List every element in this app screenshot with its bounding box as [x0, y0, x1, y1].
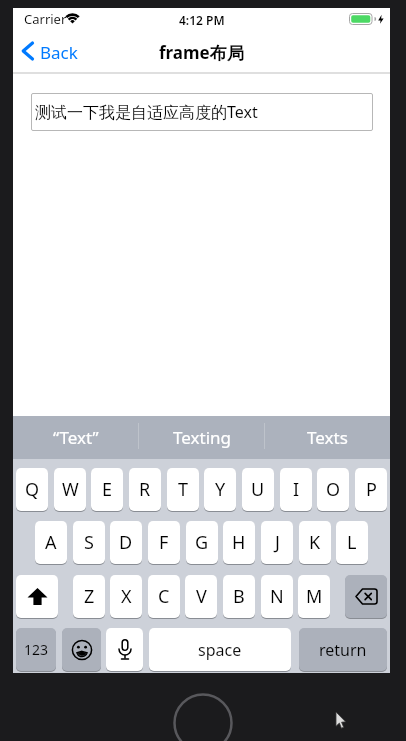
button[interactable]: O [317, 468, 349, 511]
staticText: 4:12 PM [179, 12, 225, 28]
staticText: H [232, 530, 246, 555]
staticText: E [102, 477, 113, 502]
button[interactable]: W [54, 468, 86, 511]
staticText: G [195, 530, 209, 555]
button[interactable]: Y [204, 468, 236, 511]
button[interactable]: Back [40, 32, 78, 72]
staticText: Texts [307, 426, 348, 449]
staticText: J [275, 530, 280, 555]
staticText: A [45, 530, 57, 555]
button[interactable] [16, 575, 58, 618]
button[interactable]: Texts [265, 416, 390, 459]
staticText: X [121, 584, 132, 609]
button[interactable]: H [223, 521, 255, 564]
button[interactable]: space [149, 628, 291, 671]
staticText: B [233, 584, 245, 609]
button[interactable]: D [110, 521, 142, 564]
button[interactable]: L [336, 521, 368, 564]
button[interactable]: B [223, 575, 255, 618]
button[interactable]: N [261, 575, 293, 618]
staticText: P [366, 477, 377, 502]
staticText: Z [84, 584, 95, 609]
button[interactable]: Texting [139, 416, 264, 459]
staticText: C [158, 584, 170, 609]
staticText: “Text” [53, 426, 99, 449]
button[interactable]: return [299, 628, 387, 671]
staticText: 测试一下我是自适应高度的Text [35, 101, 258, 123]
button[interactable] [345, 575, 387, 618]
staticText: Carrier [24, 10, 67, 28]
staticText: L [347, 530, 357, 555]
staticText: F [159, 530, 169, 555]
button[interactable]: I [280, 468, 312, 511]
button[interactable]: J [261, 521, 293, 564]
staticText: O [326, 477, 341, 502]
button[interactable] [62, 628, 101, 671]
staticText: space [198, 639, 242, 661]
button[interactable]: R [129, 468, 161, 511]
button[interactable]: F [148, 521, 180, 564]
staticText: frame布局 [159, 41, 244, 64]
staticText: N [270, 584, 284, 609]
button[interactable]: C [148, 575, 180, 618]
staticText: U [251, 477, 265, 502]
staticText: V [196, 584, 207, 609]
staticText: W [62, 477, 79, 502]
button[interactable]: M [298, 575, 330, 618]
button[interactable]: T [167, 468, 199, 511]
staticText: K [309, 530, 321, 555]
button[interactable]: X [110, 575, 142, 618]
button[interactable]: G [186, 521, 218, 564]
button[interactable]: Q [16, 468, 48, 511]
button[interactable]: P [355, 468, 387, 511]
button[interactable]: “Text” [13, 416, 138, 459]
staticText: T [178, 477, 189, 502]
button[interactable]: 123 [16, 628, 56, 671]
button[interactable] [106, 628, 143, 671]
staticText: return [319, 639, 367, 661]
button[interactable]: S [73, 521, 105, 564]
button[interactable]: E [91, 468, 123, 511]
button[interactable]: Z [73, 575, 105, 618]
staticText: I [293, 477, 300, 502]
staticText: D [119, 530, 133, 555]
button[interactable]: U [242, 468, 274, 511]
staticText: Back [40, 41, 78, 64]
button[interactable]: V [185, 575, 217, 618]
button[interactable]: 测试一下我是自适应高度的Text [31, 93, 373, 131]
staticText: M [306, 584, 323, 609]
staticText: Texting [173, 426, 231, 449]
button[interactable]: A [35, 521, 67, 564]
button[interactable]: K [299, 521, 331, 564]
staticText: Y [215, 477, 226, 502]
staticText: R [139, 477, 151, 502]
staticText: 123 [24, 640, 49, 659]
staticText: S [84, 530, 94, 555]
staticText: Q [25, 477, 40, 502]
